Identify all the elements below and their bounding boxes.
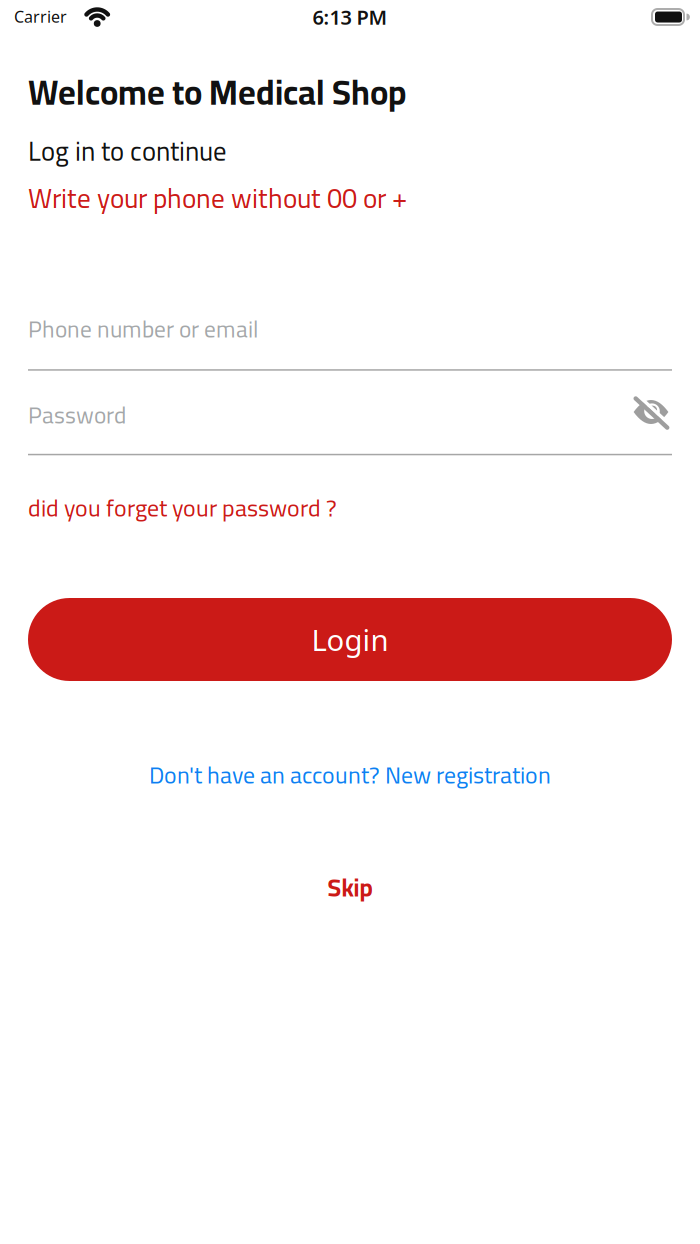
button[interactable]: Don't have an account? New registration xyxy=(149,752,551,797)
staticText: Skip xyxy=(327,864,372,910)
button[interactable]: Password xyxy=(28,393,672,449)
button[interactable]: did you forget your password ? xyxy=(28,485,337,530)
staticText: Log in to continue xyxy=(28,126,226,176)
staticText: Phone number or email xyxy=(28,307,258,351)
staticText: Don't have an account? New registration xyxy=(149,752,551,797)
staticText: Welcome to Medical Shop xyxy=(28,60,406,124)
button[interactable]: Phone number or email xyxy=(28,307,672,363)
button[interactable]: Login xyxy=(28,598,672,681)
staticText: Password xyxy=(28,393,126,437)
staticText: Carrier xyxy=(14,6,67,27)
button[interactable]: Show password xyxy=(631,393,671,433)
staticText: Write your phone without 00 or + xyxy=(28,172,407,223)
staticText: Login xyxy=(311,620,388,659)
staticText: 6:13 PM xyxy=(312,4,387,30)
staticText: did you forget your password ? xyxy=(28,485,337,530)
button[interactable]: Skip xyxy=(327,864,372,910)
